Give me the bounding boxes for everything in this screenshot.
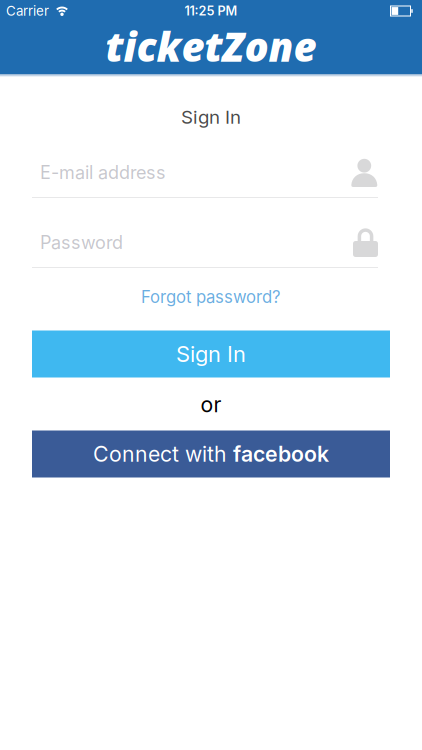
staticText: Password: [40, 232, 123, 253]
staticText: ticketZone: [105, 19, 316, 73]
button[interactable]: Connect with facebook: [32, 430, 390, 477]
staticText: Carrier: [6, 3, 49, 19]
staticText: E-mail address: [40, 162, 166, 183]
staticText: Forgot password?: [141, 287, 281, 307]
button[interactable]: Password: [32, 228, 378, 268]
button[interactable]: Sign In: [32, 330, 390, 377]
staticText: Sign In: [176, 341, 246, 367]
button[interactable]: Forgot password?: [141, 287, 281, 307]
staticText: Connect with facebook: [93, 441, 329, 467]
staticText: or: [200, 392, 221, 417]
staticText: 11:25 PM: [184, 3, 237, 19]
staticText: Sign In: [181, 106, 241, 128]
button[interactable]: E-mail address: [32, 158, 378, 198]
